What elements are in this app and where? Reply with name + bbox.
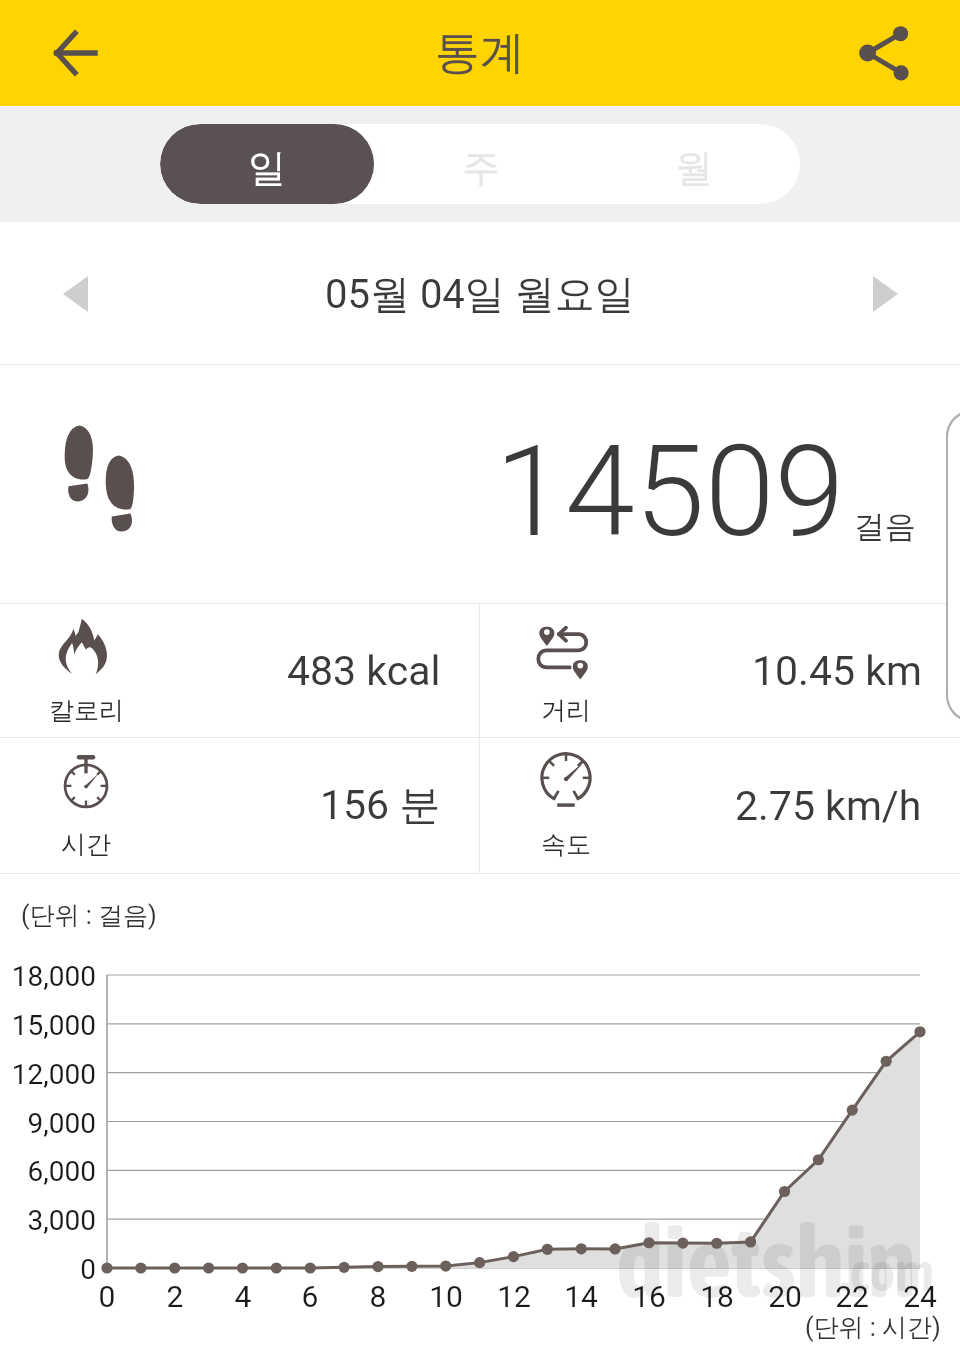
staticText: 05월 04일 월요일 <box>325 269 635 319</box>
button[interactable]: 일 <box>160 124 374 204</box>
staticText: (단위 : 걸음) <box>21 900 157 931</box>
staticText: 15,000 <box>2 1009 96 1042</box>
staticText: 12,000 <box>2 1058 96 1091</box>
staticText: 483 kcal <box>287 647 441 695</box>
staticText: 0 <box>77 1279 137 1314</box>
staticText: 월 <box>675 144 713 192</box>
staticText: 10.45 km <box>752 647 922 695</box>
button[interactable]: 시간 <box>0 738 479 873</box>
staticText: 16 <box>619 1279 679 1314</box>
staticText: 8 <box>348 1279 408 1314</box>
staticText: 6,000 <box>2 1155 96 1188</box>
staticText: 3,000 <box>2 1204 96 1237</box>
staticText: 9,000 <box>2 1107 96 1140</box>
staticText: 22 <box>822 1279 882 1314</box>
staticText: 주 <box>462 144 500 192</box>
staticText: 12 <box>484 1279 544 1314</box>
staticText: 0 <box>2 1253 96 1286</box>
staticText: 걸음 <box>854 507 916 546</box>
button[interactable]: 거리 <box>480 604 960 737</box>
button[interactable]: 칼로리 <box>0 604 479 737</box>
staticText: 20 <box>755 1279 815 1314</box>
staticText: 18,000 <box>2 960 96 993</box>
button[interactable]: 주 <box>374 124 587 204</box>
staticText: 속도 <box>541 829 591 860</box>
staticText: 156 분 <box>320 780 441 832</box>
button[interactable]: Next day <box>845 254 925 334</box>
staticText: 일 <box>248 144 286 192</box>
button[interactable]: Back <box>28 6 122 100</box>
staticText: 24 <box>890 1279 950 1314</box>
staticText: .com <box>840 1241 934 1303</box>
button[interactable]: Previous day <box>35 254 115 334</box>
staticText: 2.75 km/h <box>735 782 922 830</box>
staticText: 거리 <box>541 695 591 726</box>
staticText: 4 <box>213 1279 273 1314</box>
button[interactable]: Share <box>838 6 932 100</box>
staticText: (단위 : 시간) <box>805 1312 941 1343</box>
button[interactable]: 월 <box>587 124 800 204</box>
staticText: 시간 <box>61 829 111 860</box>
staticText: 14 <box>551 1279 611 1314</box>
staticText: 10 <box>416 1279 476 1314</box>
staticText: 18 <box>687 1279 747 1314</box>
staticText: 통계 <box>435 25 525 82</box>
staticText: 6 <box>280 1279 340 1314</box>
staticText: 2 <box>145 1279 205 1314</box>
staticText: 14509 <box>495 418 845 566</box>
staticText: dietshin <box>616 1204 916 1319</box>
staticText: 칼로리 <box>49 695 124 726</box>
button[interactable]: 속도 <box>480 738 960 873</box>
